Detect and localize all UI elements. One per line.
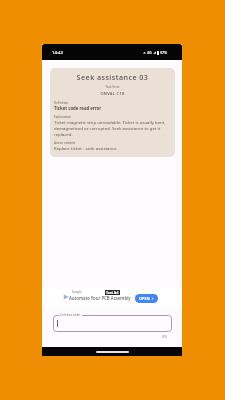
staticText: 97% [160,50,168,55]
staticText: 0/3 [162,334,167,338]
staticText: OPEN [139,296,150,301]
other: Ad [63,294,69,300]
staticText: Explanation [54,115,72,119]
staticText: Replace ticket - seek assistance [54,145,117,151]
button[interactable] [53,315,172,332]
staticText: ONVAL C18 [54,91,171,96]
staticText: Action needed [54,141,75,145]
button[interactable]: OPEN [135,294,158,303]
staticText: Ticket magnetic strip unreadable. Ticket… [54,119,171,137]
staticText: Google [72,290,82,294]
staticText: Test Ad [106,290,119,295]
staticText: Seek assistance 03 [54,72,171,82]
staticText: Definition [54,101,69,105]
staticText: Ticket code read error [54,105,102,111]
staticText: Automate Your PCB Assembly [69,295,131,301]
button[interactable]: Ad [42,287,182,307]
button[interactable]: Seek assistance 03 [50,68,175,157]
staticText: 14:42 [52,49,63,55]
staticText: Celebra code [60,312,81,316]
staticText: Text: Error [54,85,171,89]
staticText: 4G [147,50,152,55]
